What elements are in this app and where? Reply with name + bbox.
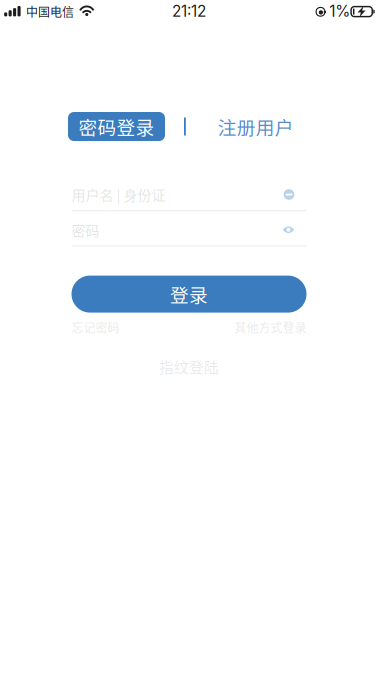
- staticText: 密码登录: [78, 113, 154, 140]
- button[interactable]: Clear: [283, 189, 306, 200]
- staticText: 21:12: [172, 2, 206, 20]
- staticText: 登录: [170, 281, 208, 308]
- staticText: 密码: [71, 220, 99, 240]
- staticText: 指纹登陆: [159, 356, 219, 377]
- button[interactable]: Show password: [282, 225, 306, 235]
- staticText: 忘记密码: [71, 319, 119, 336]
- button[interactable]: 其他方式登录: [234, 319, 306, 336]
- staticText: 其他方式登录: [234, 319, 306, 336]
- button[interactable]: 注册用户: [218, 112, 294, 141]
- button[interactable]: 忘记密码: [71, 319, 119, 336]
- button[interactable]: 指纹登陆: [71, 356, 306, 377]
- button[interactable]: 密码登录: [68, 112, 165, 141]
- staticText: 1%: [329, 2, 350, 20]
- staticText: 注册用户: [218, 113, 294, 140]
- button[interactable]: 登录: [71, 276, 306, 313]
- staticText: 用户名 | 身份证: [71, 184, 165, 205]
- staticText: 中国电信: [26, 3, 74, 20]
